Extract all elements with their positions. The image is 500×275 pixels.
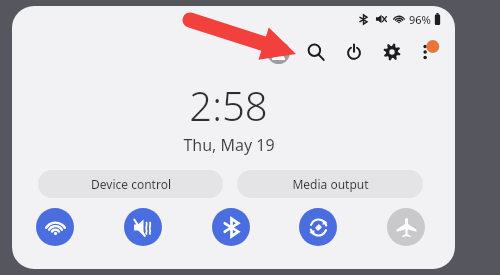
staticText: 96% [409, 12, 431, 27]
staticText: 2:58 [189, 78, 268, 132]
button[interactable]: Media output [237, 170, 423, 198]
button[interactable]: Device control [38, 170, 223, 198]
button[interactable]: Bluetooth [212, 208, 250, 246]
button[interactable]: Airplane mode [387, 208, 425, 246]
staticText: Device control [91, 176, 171, 192]
button[interactable]: Sound mode [124, 208, 162, 246]
button[interactable]: More options [413, 37, 443, 67]
staticText: Media output [292, 176, 369, 192]
staticText: Thu, May 19 [183, 134, 275, 156]
button[interactable]: Settings [377, 37, 407, 67]
button[interactable]: Search [301, 37, 331, 67]
button[interactable]: Auto rotate [299, 208, 337, 246]
button[interactable]: User account [263, 37, 293, 67]
button[interactable]: Wi-Fi [36, 208, 74, 246]
button[interactable]: Power [339, 37, 369, 67]
